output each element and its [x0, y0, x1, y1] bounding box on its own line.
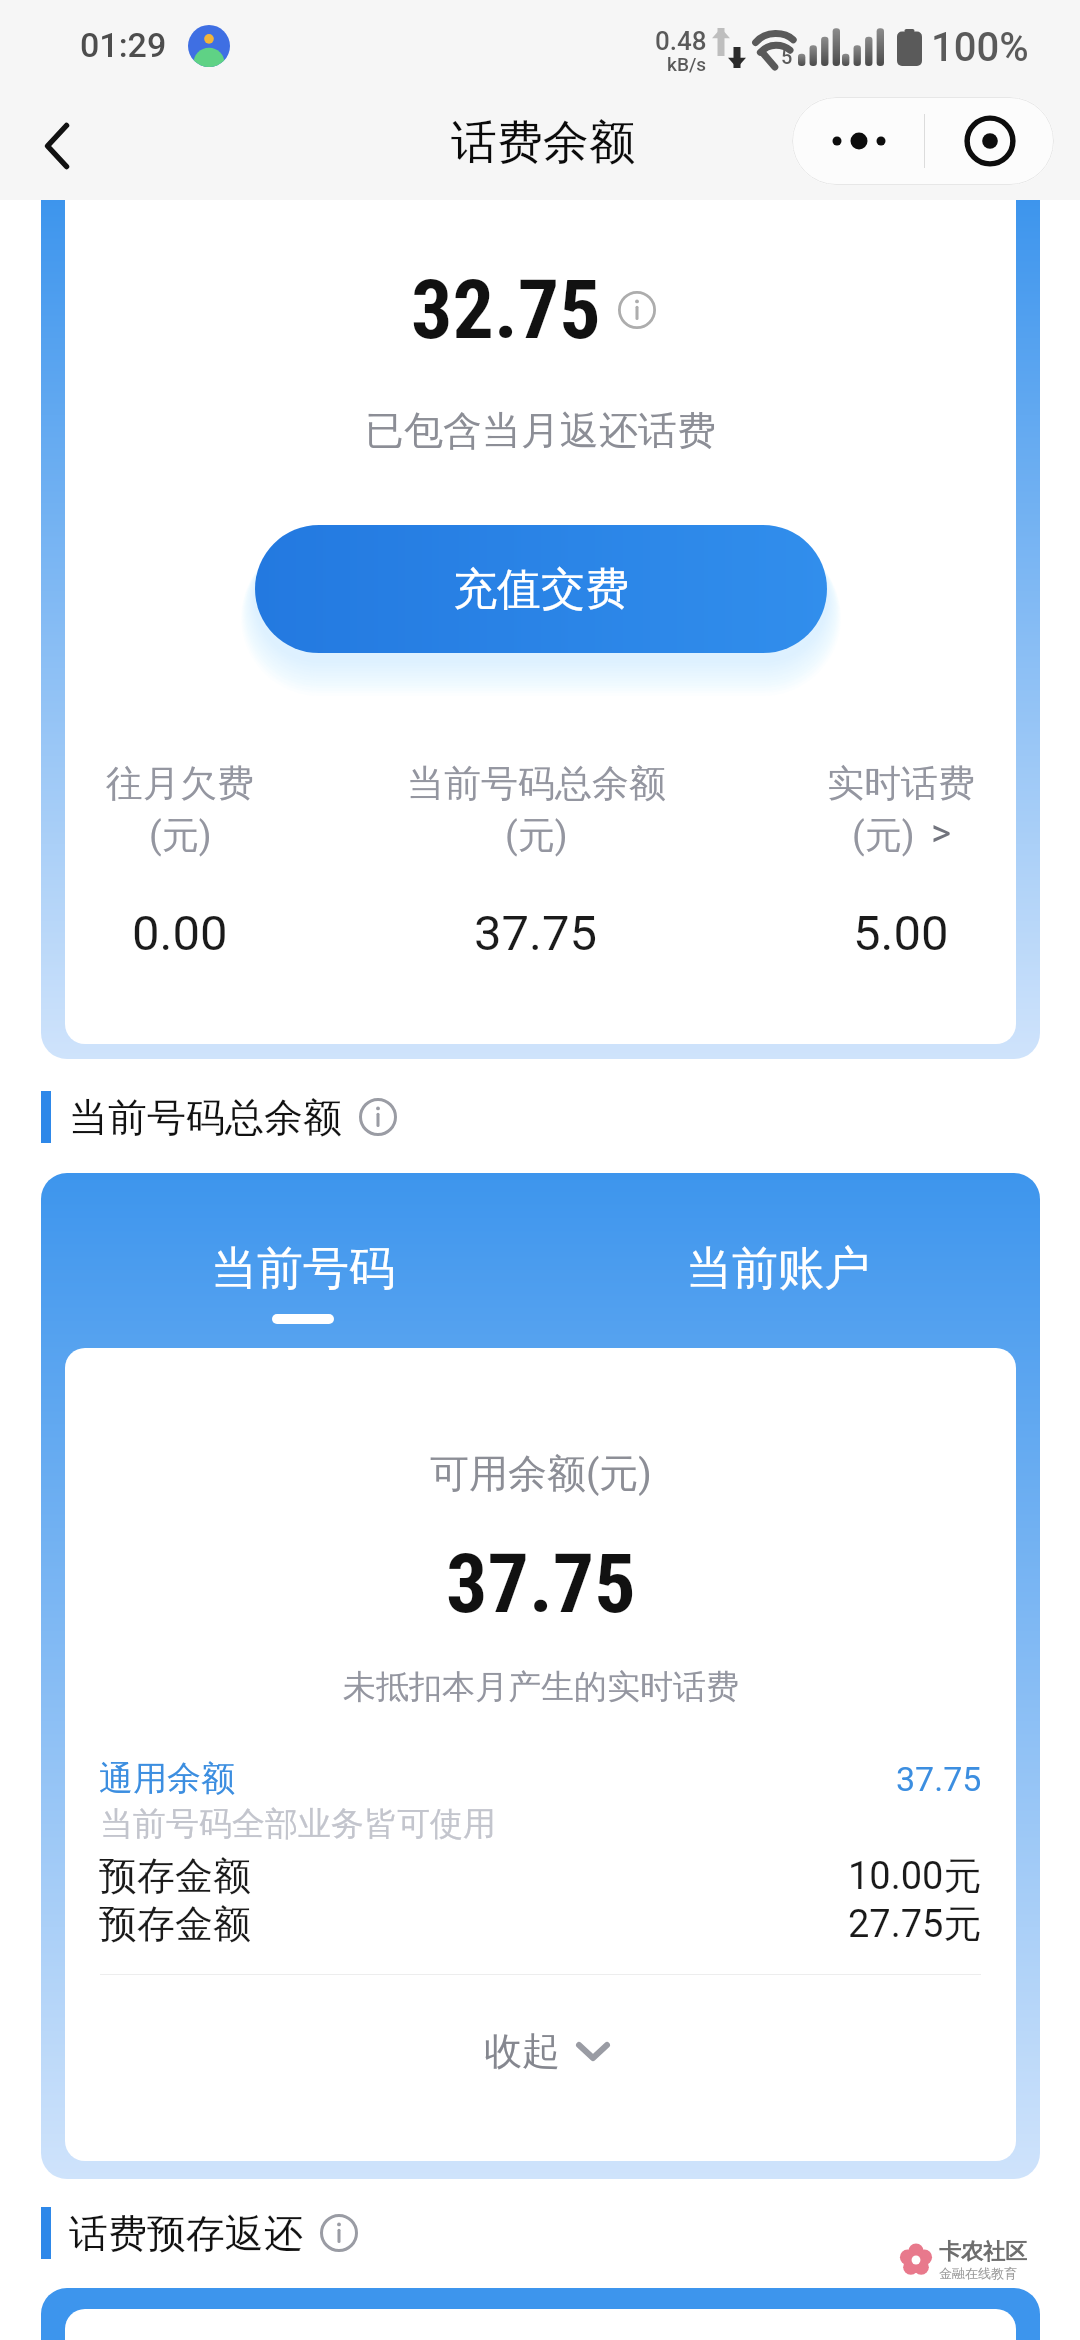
staticText: 通用余额 [99, 1757, 235, 1800]
staticText: 当前账户 [686, 1240, 870, 1298]
staticText: 当前号码总余额 [69, 1093, 342, 1142]
staticText: 10.00元 [848, 1852, 982, 1900]
staticText: 充值交费 [453, 562, 629, 617]
staticText: (元) [149, 812, 212, 859]
staticText: kB/s [667, 53, 707, 75]
staticText: 37.75 [896, 1759, 982, 1799]
button[interactable]: 当前号码 [65, 1173, 540, 1348]
staticText: (元) [505, 812, 568, 859]
button[interactable]: 当前账户 [540, 1173, 1016, 1348]
staticText: 可用余额(元) [430, 1449, 652, 1498]
staticText: 0.00 [132, 905, 228, 962]
button[interactable]: Close mini program [925, 97, 1054, 185]
staticText: 实时话费 [827, 760, 975, 807]
staticText: 话费余额 [451, 114, 635, 172]
button[interactable]: 往月欠费 [65, 760, 295, 962]
staticText: 金融在线教育 [939, 2265, 1017, 2281]
staticText: 37.75 [474, 905, 598, 962]
button[interactable]: 实时话费 [786, 760, 1016, 962]
staticText: 当前号码总余额 [407, 760, 666, 807]
button[interactable]: 充值交费 [255, 525, 827, 653]
staticText: 预存金额 [99, 1900, 251, 1948]
staticText: 当前号码全部业务皆可使用 [100, 1803, 1016, 1845]
staticText: 已包含当月返还话费 [365, 406, 716, 455]
staticText: 100% [931, 24, 1029, 71]
staticText: 当前号码 [211, 1240, 395, 1298]
staticText: 32.75 [411, 262, 601, 358]
staticText: 5.00 [853, 905, 949, 962]
staticText: 预存金额 [99, 1852, 251, 1900]
staticText: 往月欠费 [106, 760, 254, 807]
staticText: 0.48 [655, 26, 707, 56]
staticText: 27.75元 [848, 1900, 982, 1948]
staticText: 01:29 [80, 25, 167, 65]
button[interactable]: 当前号码总余额 [386, 760, 686, 962]
staticText: 话费预存返还 [69, 2209, 303, 2258]
staticText: 37.75 [446, 1536, 636, 1632]
staticText: 未抵扣本月产生的实时话费 [343, 1666, 739, 1708]
staticText: 5 [781, 45, 793, 68]
staticText: > [931, 811, 951, 856]
staticText: 收起 [484, 2027, 560, 2075]
staticText: (元) [852, 812, 915, 859]
button[interactable]: 收起 [71, 2027, 1016, 2075]
staticText: 卡农社区 [939, 2238, 1027, 2266]
button[interactable]: More options [792, 97, 924, 185]
button[interactable]: Back [0, 92, 110, 200]
